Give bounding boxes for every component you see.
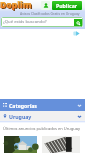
button[interactable] [42,136,80,153]
button[interactable] [4,136,37,153]
button[interactable]: Categorías [0,99,85,111]
staticText: Avisos Clasificados Gratis en Uruguay [20,11,80,16]
button[interactable]: ¿Qué estás buscando? [1,17,83,27]
button[interactable]: Uruguay [0,111,85,121]
staticText: Publicar [56,2,78,9]
staticText: Doplim [0,0,32,11]
button[interactable]: Mi cuenta [41,1,50,10]
staticText: Categorías [9,102,37,109]
staticText: ¿Qué estás buscando? [3,19,47,25]
staticText: Doplim [1,0,33,12]
button[interactable]: Doplim [0,0,32,11]
button[interactable]: Buscar [74,19,82,27]
staticText: Últimos anuncios publicados en Uruguay [3,126,81,131]
staticText: Doplim [0,0,32,11]
button[interactable]: Publicar [52,1,82,10]
staticText: Uruguay [9,113,32,120]
